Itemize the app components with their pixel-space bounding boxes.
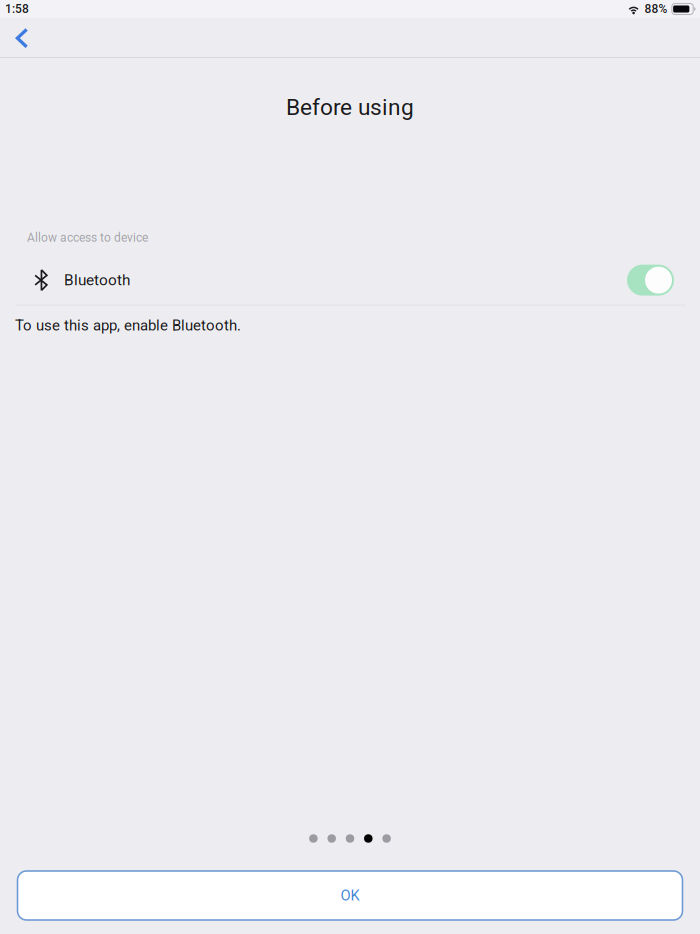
staticText: To use this app, enable Bluetooth. [15,317,241,334]
button[interactable]: Back [0,18,44,57]
staticText: OK [340,887,359,904]
button[interactable]: Bluetooth [627,256,700,305]
staticText: 88% [644,2,667,16]
staticText: 1:58 [5,2,29,16]
staticText: Bluetooth [64,271,130,289]
staticText: Allow access to device [27,231,148,245]
button[interactable]: OK [17,871,682,920]
staticText: Before using [286,94,414,121]
